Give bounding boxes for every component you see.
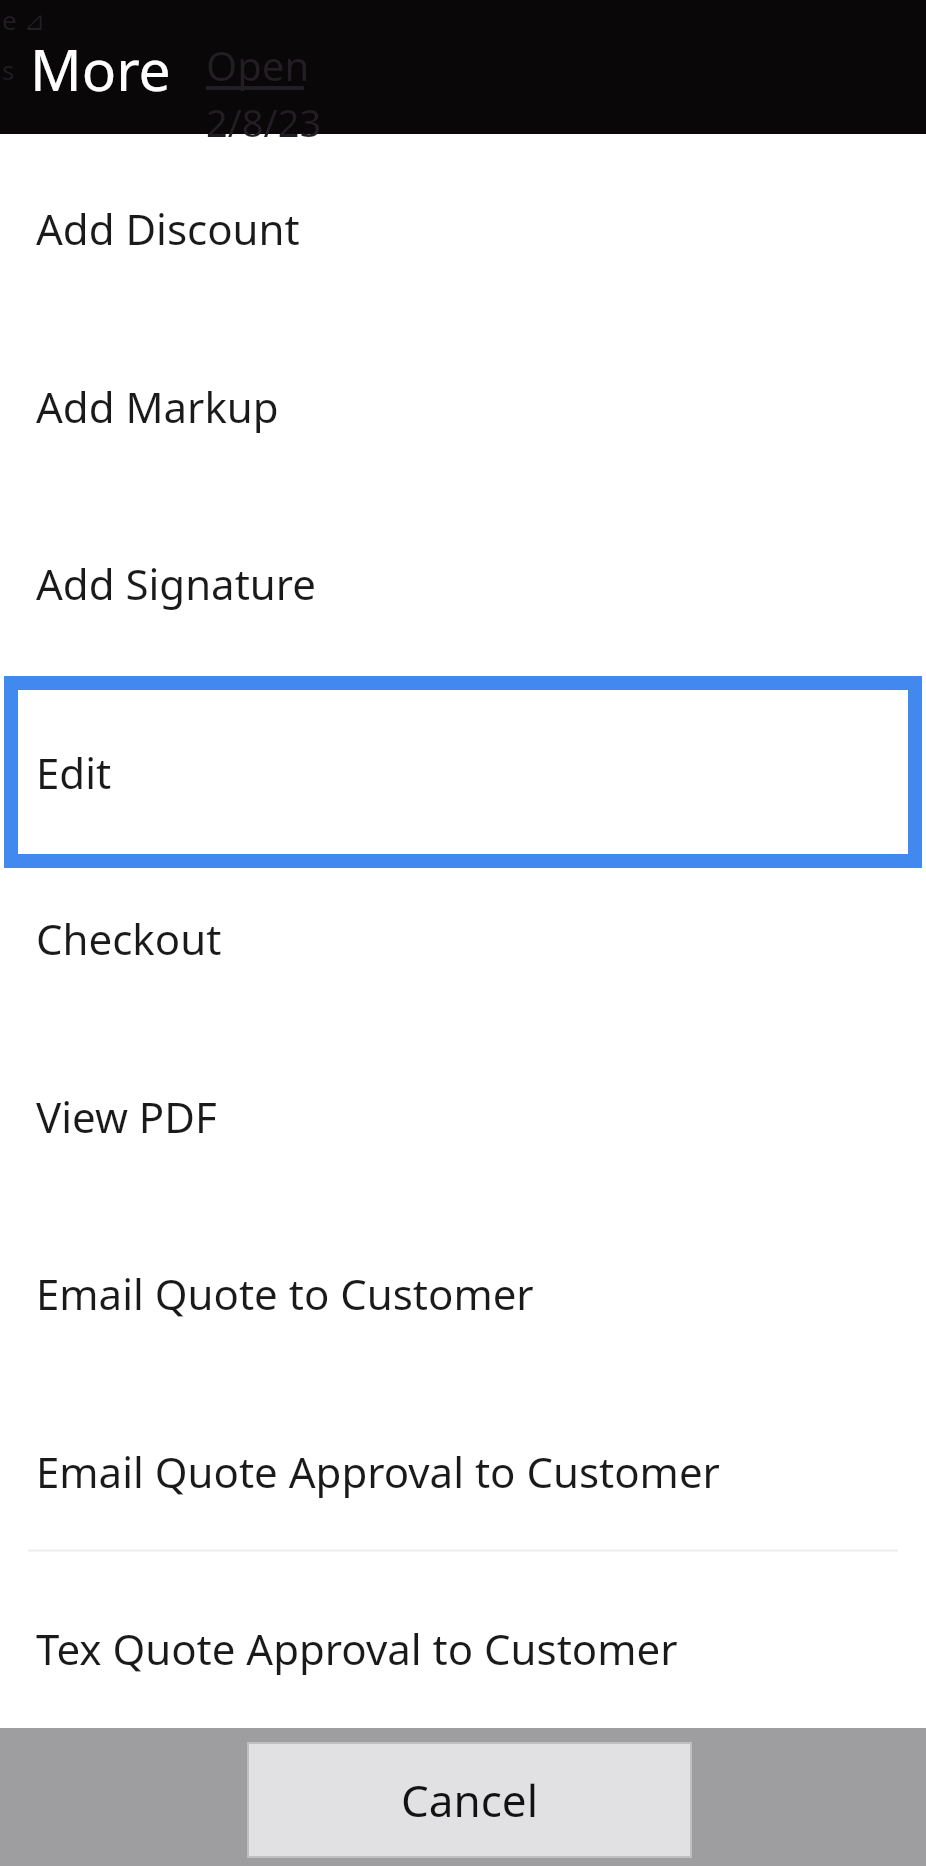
staticText: Add Markup bbox=[36, 378, 279, 435]
button[interactable]: Email Quote to Customer bbox=[0, 1204, 926, 1382]
staticText: Tex Quote Approval to Customer bbox=[36, 1620, 678, 1677]
staticText: Edit bbox=[36, 744, 112, 801]
button[interactable]: Add Markup bbox=[0, 317, 926, 495]
button[interactable]: Tex Quote Approval to Customer bbox=[0, 1559, 926, 1737]
staticText: Email Quote to Customer bbox=[36, 1265, 534, 1322]
staticText: Open bbox=[206, 38, 310, 92]
staticText: Email Quote Approval to Customer bbox=[36, 1443, 720, 1500]
staticText: View PDF bbox=[36, 1088, 217, 1145]
staticText: Add Signature bbox=[36, 555, 316, 612]
staticText: 2/8/23 bbox=[206, 96, 322, 148]
staticText: Cancel bbox=[401, 1770, 538, 1830]
staticText: e ⊿ bbox=[2, 2, 46, 37]
staticText: Add Discount bbox=[36, 200, 300, 257]
button[interactable]: Add Signature bbox=[0, 494, 926, 672]
button[interactable]: Checkout bbox=[0, 849, 926, 1027]
staticText: s bbox=[2, 52, 15, 87]
staticText: Checkout bbox=[36, 910, 222, 967]
button[interactable]: Email Quote Approval to Customer bbox=[0, 1382, 926, 1560]
button[interactable]: View PDF bbox=[0, 1027, 926, 1205]
button[interactable]: Add Discount bbox=[0, 139, 926, 317]
staticText: More bbox=[30, 30, 171, 108]
button[interactable]: Edit bbox=[4, 676, 922, 868]
button[interactable]: Cancel bbox=[249, 1744, 690, 1856]
